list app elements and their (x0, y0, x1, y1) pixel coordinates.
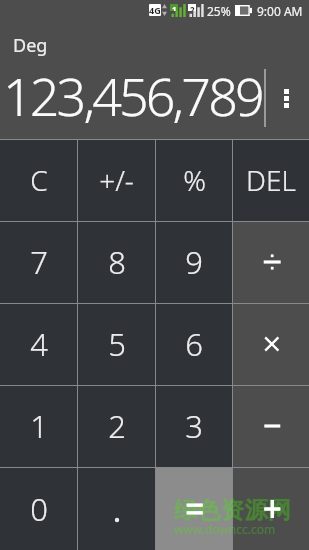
staticText: 1 (172, 4, 177, 11)
staticText: 7 (30, 241, 48, 283)
staticText: www.downcc.com (174, 521, 276, 537)
button[interactable]: Plus (233, 467, 309, 550)
staticText: 5 (108, 323, 126, 365)
staticText: 9:00 AM (257, 3, 303, 19)
button[interactable]: 9 (156, 221, 232, 303)
staticText: % (183, 161, 206, 199)
other: Divide (260, 251, 282, 273)
button[interactable]: Decimal point (78, 467, 155, 550)
staticText: 8 (108, 241, 126, 283)
staticText: 2 (190, 4, 195, 11)
staticText: 25% (207, 3, 231, 19)
staticText: 6 (185, 323, 203, 365)
staticText: 9 (185, 241, 203, 283)
staticText: 3 (185, 405, 203, 447)
staticText: C (30, 161, 48, 199)
button[interactable]: 8 (78, 221, 155, 303)
staticText: 0 (30, 488, 48, 530)
other: Plus (260, 498, 282, 520)
button[interactable]: % (156, 139, 232, 221)
staticText: 1 (30, 405, 48, 447)
staticText: 4G (149, 4, 161, 16)
button[interactable]: DEL (233, 139, 309, 221)
button[interactable]: 5 (78, 303, 155, 385)
other: Plus (260, 498, 282, 520)
button[interactable]: 7 (0, 221, 77, 303)
button[interactable]: Minus (233, 385, 309, 467)
other: Multiply (260, 333, 282, 355)
staticText: 绿色资源网 (174, 496, 291, 525)
staticText: 4 (30, 323, 48, 365)
staticText: 123,456,789 (3, 60, 262, 131)
button[interactable]: Multiply (233, 303, 309, 385)
staticText: +/- (99, 161, 134, 199)
button[interactable]: Equals (156, 467, 232, 550)
other: Equals (183, 498, 205, 520)
button[interactable]: More options (272, 84, 300, 112)
staticText: 2 (108, 405, 126, 447)
button[interactable]: 0 (0, 467, 77, 550)
button[interactable]: 2 (78, 385, 155, 467)
other: Minus (260, 415, 282, 437)
other: Decimal point (106, 498, 128, 520)
staticText: Deg (13, 33, 48, 58)
other: Equals (183, 498, 205, 520)
button[interactable]: 3 (156, 385, 232, 467)
button[interactable]: 1 (0, 385, 77, 467)
button[interactable]: C (0, 139, 77, 221)
staticText: DEL (246, 161, 296, 199)
button[interactable]: +/- (78, 139, 155, 221)
button[interactable]: Divide (233, 221, 309, 303)
button[interactable]: 6 (156, 303, 232, 385)
button[interactable]: 4 (0, 303, 77, 385)
